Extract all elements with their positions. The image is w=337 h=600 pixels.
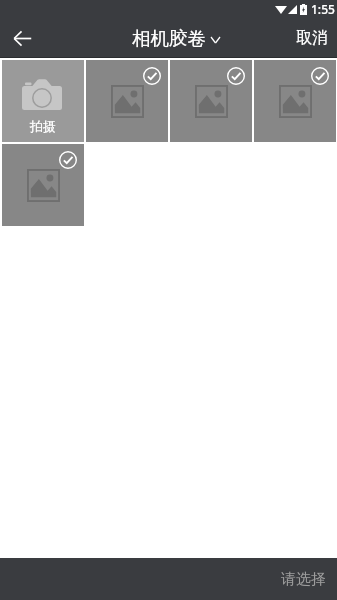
other: Selected bbox=[143, 67, 161, 85]
button[interactable]: Selected bbox=[86, 60, 168, 142]
button[interactable]: Selected bbox=[254, 60, 336, 142]
button[interactable]: 取消 bbox=[283, 19, 337, 57]
button[interactable]: 请选择 bbox=[267, 558, 337, 600]
staticText: 相机胶卷 bbox=[132, 27, 206, 50]
button[interactable]: Back bbox=[0, 19, 44, 57]
staticText: 取消 bbox=[296, 28, 328, 48]
staticText: 拍摄 bbox=[30, 118, 56, 134]
button[interactable]: Selected bbox=[2, 144, 84, 226]
button[interactable]: 拍摄 bbox=[2, 60, 84, 142]
other: Selected bbox=[227, 67, 245, 85]
staticText: 1:55 bbox=[311, 1, 335, 17]
other: Selected bbox=[59, 151, 77, 169]
staticText: 请选择 bbox=[281, 570, 326, 589]
button[interactable]: Selected bbox=[170, 60, 252, 142]
button[interactable]: 相机胶卷 bbox=[124, 23, 228, 54]
other: Selected bbox=[311, 67, 329, 85]
